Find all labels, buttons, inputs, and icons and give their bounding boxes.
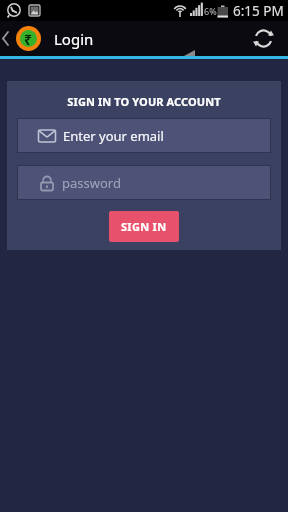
staticText: Enter your email bbox=[63, 127, 164, 145]
button[interactable]: SIGN IN bbox=[109, 211, 179, 242]
button[interactable]: ₹ bbox=[16, 21, 94, 56]
button[interactable]: Enter your email bbox=[17, 118, 271, 153]
staticText: password bbox=[62, 174, 121, 192]
button[interactable]: password bbox=[17, 165, 271, 200]
staticText: 6:15 PM bbox=[233, 2, 284, 20]
staticText: 6% bbox=[204, 5, 217, 17]
button[interactable] bbox=[253, 28, 274, 49]
staticText: Login bbox=[54, 29, 94, 49]
staticText: ₹ bbox=[24, 30, 33, 47]
staticText: SIGN IN TO YOUR ACCOUNT bbox=[7, 94, 281, 109]
staticText: SIGN IN bbox=[121, 219, 167, 234]
